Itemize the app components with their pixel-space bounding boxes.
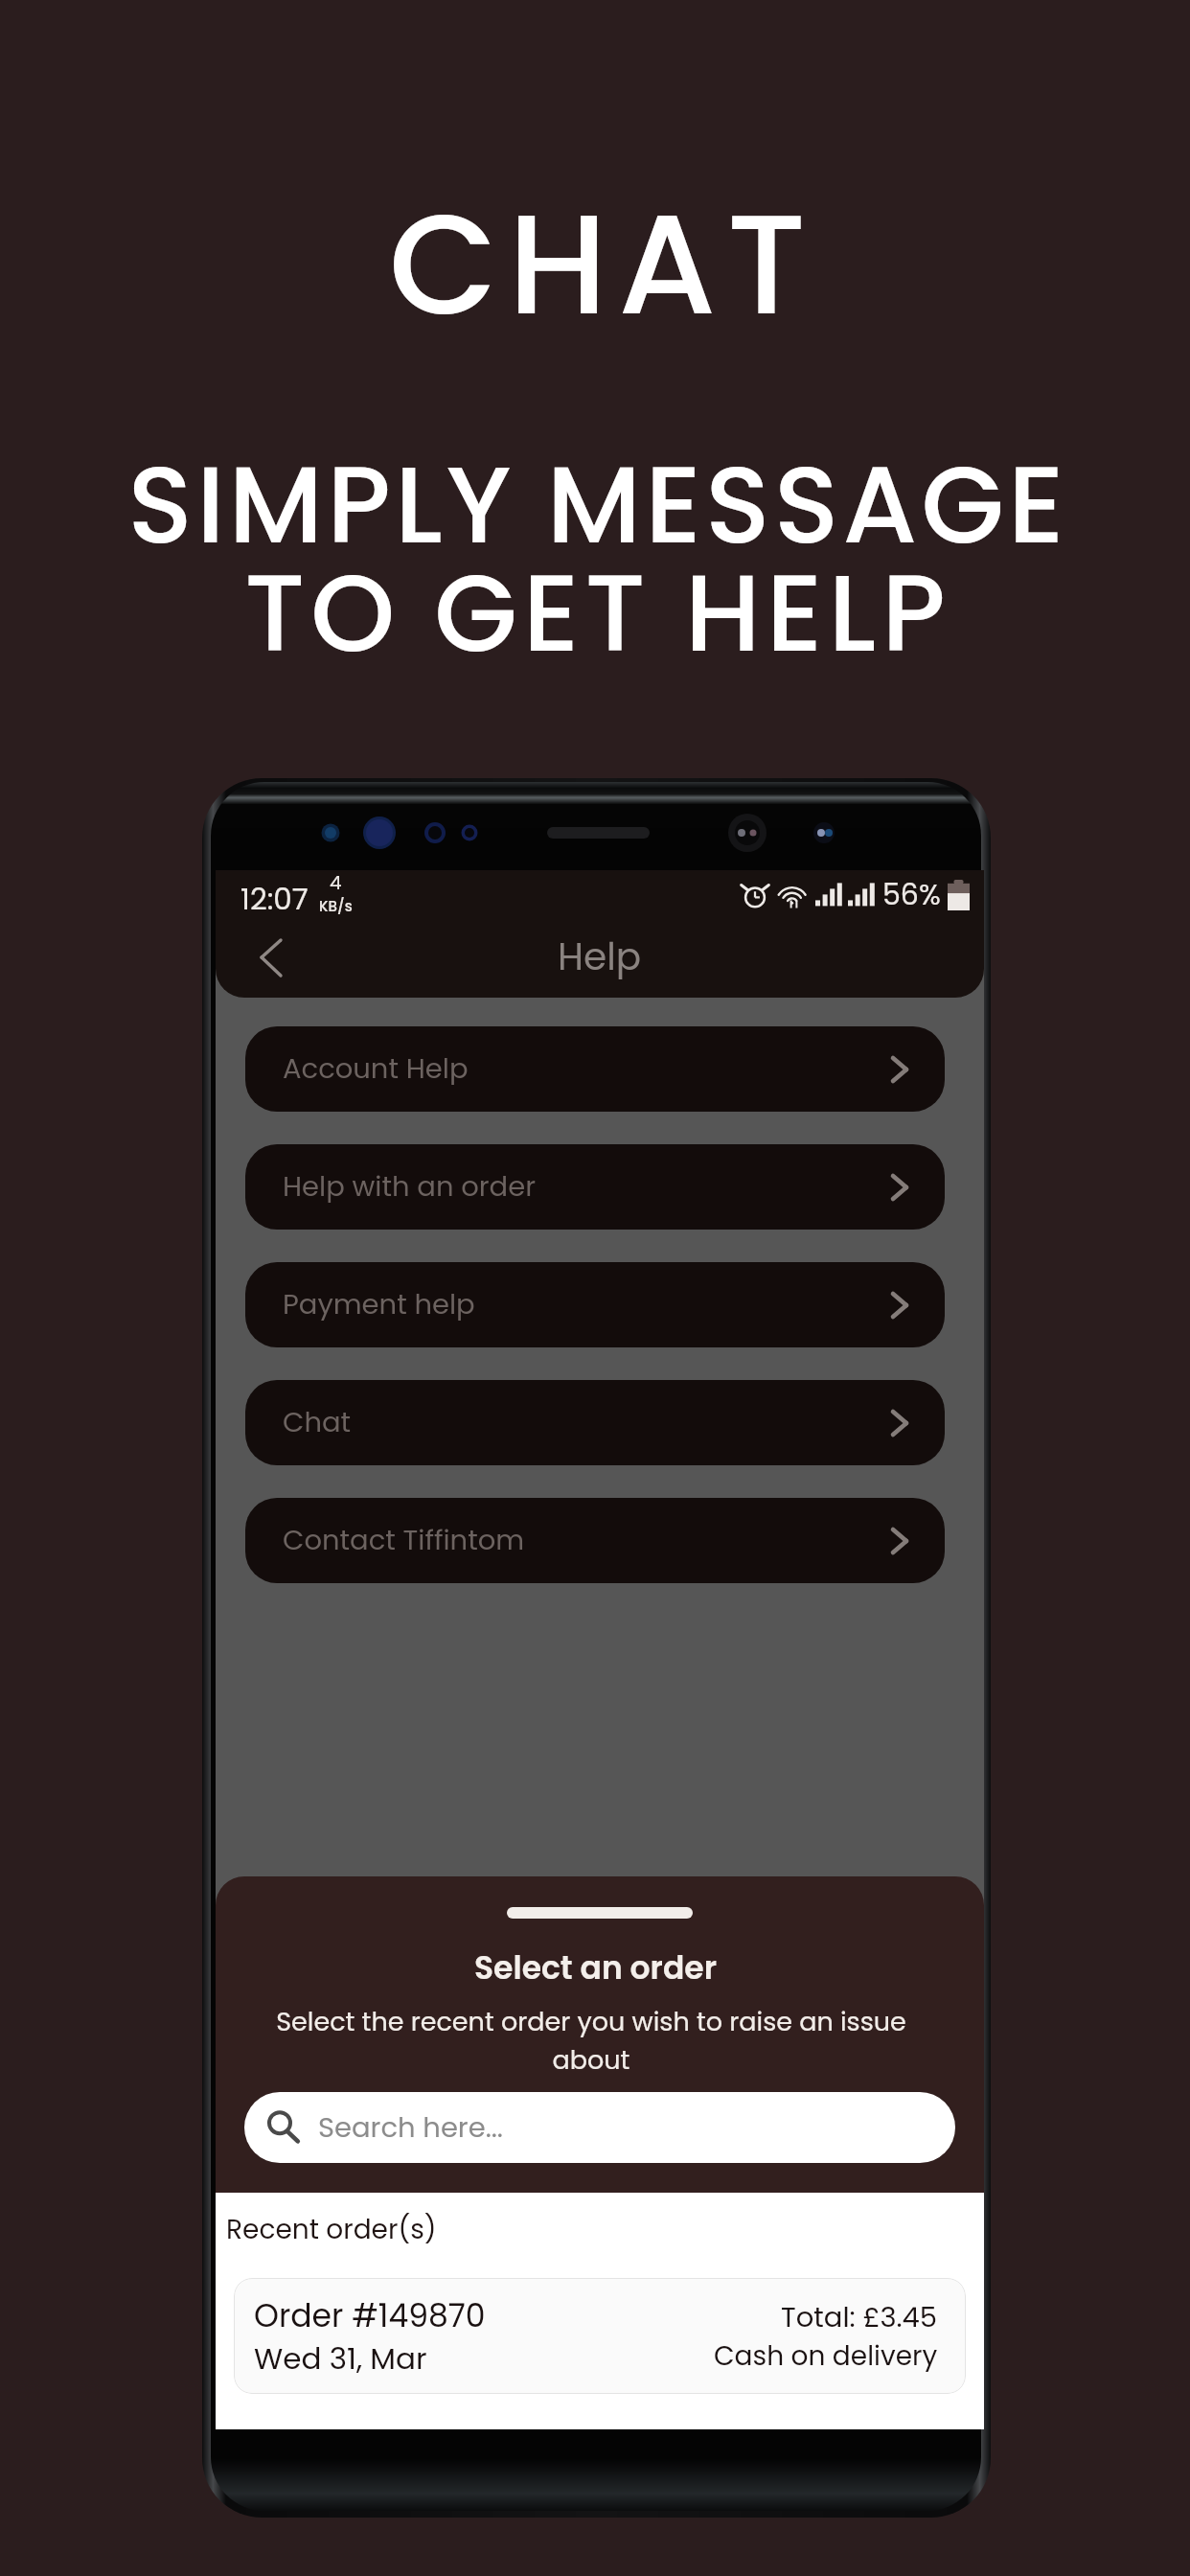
staticText: Search here...	[318, 2108, 503, 2148]
staticText: CHAT	[8, 166, 1190, 363]
staticText: Total: £3.45	[781, 2298, 938, 2337]
staticText: 12:07	[240, 878, 309, 919]
staticText: Help with an order	[283, 1167, 536, 1207]
button[interactable]: Search here...	[244, 2092, 955, 2163]
staticText: Cash on delivery	[714, 2337, 938, 2375]
staticText: KB/s	[319, 896, 353, 916]
staticText: SIMPLY MESSAGE	[3, 429, 1190, 580]
button[interactable]: Help with an order	[245, 1144, 945, 1230]
staticText: TO GET HELP	[3, 538, 1190, 688]
staticText: Chat	[283, 1403, 352, 1442]
button[interactable]: Order #149870	[234, 2278, 966, 2394]
staticText: Select the recent order you wish to rais…	[263, 2004, 920, 2079]
button[interactable]: Account Help	[245, 1026, 945, 1112]
staticText: Recent order(s)	[226, 2211, 437, 2248]
staticText: Wed 31, Mar	[254, 2337, 427, 2379]
button[interactable]: Back	[239, 925, 308, 994]
staticText: Contact Tiffintom	[283, 1521, 525, 1560]
staticText: Order #149870	[254, 2293, 486, 2337]
button[interactable]: Contact Tiffintom	[245, 1498, 945, 1583]
staticText: 4	[330, 869, 342, 896]
staticText: Payment help	[283, 1285, 475, 1324]
staticText: 56%	[882, 875, 941, 915]
staticText: Help	[558, 931, 642, 983]
button[interactable]: Payment help	[245, 1262, 945, 1347]
button[interactable]: Chat	[245, 1380, 945, 1465]
staticText: Select an order	[474, 1945, 718, 1989]
staticText: Account Help	[283, 1049, 469, 1089]
